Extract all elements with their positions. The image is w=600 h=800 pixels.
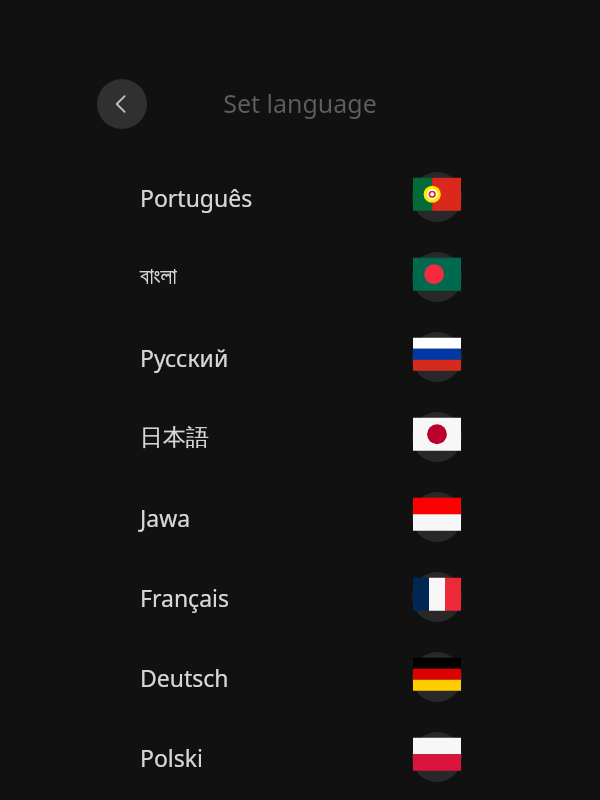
- staticText: Jawa: [140, 502, 191, 533]
- button[interactable]: Deutsch: [0, 637, 600, 717]
- staticText: Deutsch: [140, 662, 229, 693]
- staticText: বাংলা: [140, 266, 177, 289]
- staticText: 日本語: [140, 423, 209, 452]
- staticText: Português: [140, 182, 253, 213]
- button[interactable]: বাংলা: [0, 237, 600, 317]
- button[interactable]: Polski: [0, 717, 600, 797]
- button[interactable]: Back: [97, 79, 147, 129]
- button[interactable]: Jawa: [0, 477, 600, 557]
- button[interactable]: 日本語: [0, 397, 600, 477]
- button[interactable]: Português: [0, 157, 600, 237]
- staticText: Français: [140, 582, 229, 613]
- staticText: Русский: [140, 342, 229, 373]
- staticText: Set language: [0, 86, 600, 120]
- button[interactable]: Français: [0, 557, 600, 637]
- staticText: Polski: [140, 742, 203, 773]
- button[interactable]: Русский: [0, 317, 600, 397]
